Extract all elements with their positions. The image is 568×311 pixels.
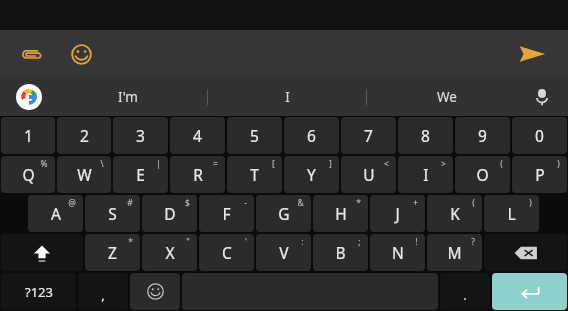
button[interactable]: S: [85, 195, 140, 232]
button[interactable]: Y: [284, 156, 339, 193]
button[interactable]: P: [512, 156, 567, 193]
staticText: M: [447, 242, 462, 263]
staticText: 2: [80, 125, 89, 146]
button[interactable]: F: [199, 195, 254, 232]
button[interactable]: 2: [57, 117, 111, 154]
staticText: !: [415, 236, 418, 248]
staticText: \: [100, 158, 104, 170]
button[interactable]: B: [313, 234, 368, 271]
staticText: R: [193, 164, 203, 185]
button[interactable]: Send: [512, 34, 552, 74]
button[interactable]: .: [440, 273, 490, 310]
staticText: ): [557, 158, 560, 170]
button[interactable]: E: [113, 156, 168, 193]
staticText: X: [165, 242, 175, 263]
staticText: W: [77, 164, 92, 185]
button[interactable]: Google: [15, 83, 43, 111]
button[interactable]: 5: [227, 117, 282, 154]
button[interactable]: ,: [78, 273, 128, 310]
staticText: <: [384, 158, 389, 170]
staticText: =: [213, 158, 218, 170]
button[interactable]: N: [370, 234, 425, 271]
staticText: ]: [329, 158, 332, 170]
staticText: 4: [193, 125, 202, 146]
staticText: S: [108, 203, 117, 224]
button[interactable]: 0: [512, 117, 567, 154]
staticText: ?: [471, 236, 475, 248]
staticText: 5: [250, 125, 259, 146]
staticText: A: [51, 203, 61, 224]
button[interactable]: Emoji: [66, 39, 96, 69]
button[interactable]: ?123: [1, 273, 76, 310]
staticText: B: [335, 242, 346, 263]
button[interactable]: I'm: [48, 78, 208, 116]
button[interactable]: H: [313, 195, 368, 232]
staticText: I: [285, 88, 290, 106]
button[interactable]: Shift: [1, 234, 83, 271]
staticText: V: [279, 242, 289, 263]
staticText: U: [363, 164, 375, 185]
button[interactable]: I: [208, 78, 367, 116]
staticText: .: [463, 286, 467, 304]
staticText: #: [127, 197, 133, 209]
staticText: T: [250, 164, 259, 185]
staticText: 9: [478, 125, 487, 146]
staticText: *: [356, 197, 361, 209]
staticText: ): [529, 197, 532, 209]
button[interactable]: T: [227, 156, 282, 193]
staticText: I: [423, 164, 429, 185]
staticText: 8: [421, 125, 430, 146]
staticText: %: [40, 158, 48, 170]
button[interactable]: C: [199, 234, 254, 271]
button[interactable]: Emoji: [130, 273, 180, 310]
button[interactable]: We: [367, 78, 526, 116]
staticText: ?123: [25, 283, 53, 301]
button[interactable]: 3: [113, 117, 168, 154]
staticText: >: [441, 158, 446, 170]
staticText: *: [128, 236, 133, 248]
staticText: (: [472, 197, 475, 209]
staticText: K: [450, 203, 460, 224]
button[interactable]: W: [57, 156, 111, 193]
staticText: :: [301, 236, 304, 248]
button[interactable]: 6: [284, 117, 339, 154]
button[interactable]: Enter: [492, 273, 567, 310]
button[interactable]: Q: [1, 156, 55, 193]
staticText: L: [507, 203, 516, 224]
button[interactable]: 7: [341, 117, 396, 154]
button[interactable]: Z: [85, 234, 140, 271]
button[interactable]: 4: [170, 117, 225, 154]
staticText: 0: [535, 125, 544, 146]
staticText: P: [535, 164, 545, 185]
staticText: -: [244, 197, 247, 209]
button[interactable]: Voice input: [526, 81, 558, 113]
staticText: F: [222, 203, 231, 224]
button[interactable]: 9: [455, 117, 510, 154]
staticText: [: [272, 158, 275, 170]
staticText: I'm: [118, 88, 138, 106]
button[interactable]: I: [398, 156, 453, 193]
button[interactable]: J: [370, 195, 425, 232]
button[interactable]: L: [484, 195, 539, 232]
button[interactable]: R: [170, 156, 225, 193]
button[interactable]: V: [256, 234, 311, 271]
staticText: @: [68, 197, 76, 209]
button[interactable]: K: [427, 195, 482, 232]
button[interactable]: 8: [398, 117, 453, 154]
staticText: O: [476, 164, 489, 185]
staticText: We: [437, 88, 457, 106]
button[interactable]: G: [256, 195, 311, 232]
button[interactable]: Backspace: [484, 234, 567, 271]
button[interactable]: O: [455, 156, 510, 193]
button[interactable]: A: [28, 195, 83, 232]
staticText: $: [185, 197, 190, 209]
button[interactable]: X: [142, 234, 197, 271]
button[interactable]: D: [142, 195, 197, 232]
button[interactable]: M: [427, 234, 482, 271]
button[interactable]: U: [341, 156, 396, 193]
button[interactable]: Attach file: [16, 39, 46, 69]
button[interactable]: 1: [1, 117, 55, 154]
staticText: +: [413, 197, 418, 209]
staticText: 3: [136, 125, 145, 146]
